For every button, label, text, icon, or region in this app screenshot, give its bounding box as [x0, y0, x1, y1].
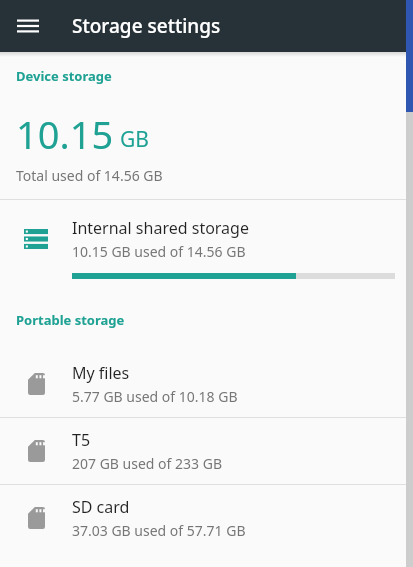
staticText: 37.03 GB used of 57.71 GB [72, 521, 246, 540]
staticText: Storage settings [72, 13, 221, 39]
button[interactable]: Internal shared storage [0, 200, 413, 279]
staticText: T5 [72, 429, 91, 451]
staticText: My files [72, 362, 130, 384]
staticText: 207 GB used of 233 GB [72, 454, 222, 473]
staticText: Total used of 14.56 GB [16, 166, 163, 185]
staticText: 5.77 GB used of 10.18 GB [72, 387, 238, 406]
staticText: Device storage [16, 67, 112, 85]
button[interactable]: T5 [0, 418, 413, 484]
staticText: 10.15 GB used of 14.56 GB [72, 242, 246, 261]
staticText: Portable storage [16, 311, 125, 329]
button[interactable]: My files [0, 351, 413, 417]
staticText: SD card [72, 496, 130, 518]
staticText: Internal shared storage [72, 217, 249, 239]
button[interactable]: Open navigation menu [8, 6, 48, 46]
button[interactable]: SD card [0, 485, 413, 551]
staticText: 10.15 [16, 108, 114, 160]
staticText: GB [120, 125, 149, 154]
